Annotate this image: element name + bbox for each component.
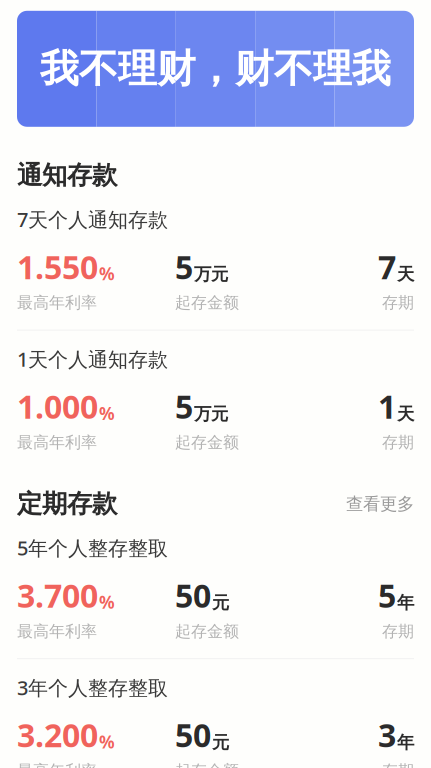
staticText: 1.550	[17, 245, 98, 288]
staticText: 5	[175, 245, 193, 288]
staticText: 5	[175, 385, 193, 428]
staticText: 我不理财，财不理我	[40, 45, 391, 92]
staticText: 定期存款	[17, 488, 117, 519]
staticText: 3年个人整存整取	[17, 674, 168, 701]
staticText: 50	[175, 714, 211, 756]
button[interactable]: 3年个人整存整取	[0, 659, 431, 768]
staticText: 万元	[194, 403, 228, 425]
staticText: 5	[378, 574, 396, 616]
staticText: 最高年利率	[17, 761, 97, 768]
staticText: 最高年利率	[17, 433, 97, 452]
staticText: 5年个人整存整取	[17, 534, 168, 561]
staticText: 查看更多	[346, 493, 414, 514]
staticText: 50	[175, 574, 211, 616]
staticText: 最高年利率	[17, 293, 97, 313]
staticText: 起存金额	[175, 293, 239, 313]
staticText: 7天个人通知存款	[17, 206, 168, 232]
staticText: 元	[212, 732, 229, 753]
button[interactable]: 5年个人整存整取	[0, 519, 431, 659]
button[interactable]: 1天个人通知存款	[0, 331, 431, 452]
staticText: 存期	[382, 433, 414, 452]
staticText: 起存金额	[175, 433, 239, 452]
staticText: 年	[397, 592, 414, 613]
staticText: 通知存款	[17, 160, 117, 191]
staticText: 最高年利率	[17, 621, 97, 641]
staticText: 3.700	[17, 574, 98, 616]
staticText: %	[99, 262, 115, 285]
staticText: 年	[397, 732, 414, 753]
staticText: 天	[397, 264, 414, 285]
staticText: 存期	[382, 761, 414, 768]
staticText: 3.200	[17, 714, 98, 756]
staticText: 天	[397, 403, 414, 425]
staticText: 3	[378, 714, 396, 756]
staticText: %	[99, 590, 115, 613]
staticText: 7	[378, 245, 396, 288]
staticText: 起存金额	[175, 761, 239, 768]
staticText: 1.000	[17, 385, 98, 428]
staticText: 1天个人通知存款	[17, 346, 168, 372]
button[interactable]: 查看更多	[346, 493, 414, 514]
staticText: 存期	[382, 621, 414, 641]
staticText: 起存金额	[175, 621, 239, 641]
staticText: %	[99, 730, 115, 753]
staticText: 1	[378, 385, 396, 428]
button[interactable]: 我不理财，财不理我 活动横幅	[0, 11, 431, 127]
staticText: %	[99, 402, 115, 425]
staticText: 万元	[194, 264, 228, 285]
staticText: 元	[212, 592, 229, 613]
button[interactable]: 7天个人通知存款	[0, 191, 431, 331]
staticText: 存期	[382, 293, 414, 313]
